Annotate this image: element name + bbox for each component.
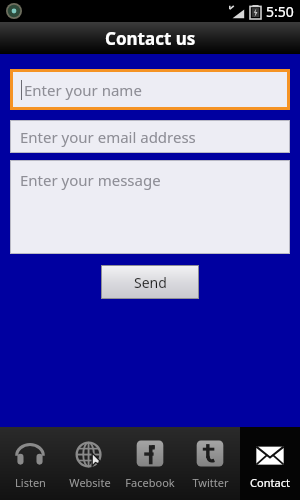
staticText: Twitter	[192, 475, 229, 490]
staticText: Send	[134, 273, 167, 292]
staticText: Facebook	[125, 475, 175, 490]
button[interactable]: Enter your message	[11, 161, 289, 253]
staticText: Enter your email address	[20, 127, 196, 147]
staticText: Listen	[15, 475, 46, 490]
staticText: 5:50	[266, 2, 294, 21]
button[interactable]: Contact	[240, 427, 300, 500]
staticText: Enter your message	[20, 170, 161, 190]
button[interactable]: Enter your name	[13, 72, 287, 107]
staticText: Enter your name	[24, 80, 142, 100]
staticText: Contact	[250, 475, 290, 490]
button[interactable]: Facebook	[120, 427, 180, 500]
button[interactable]: Enter your email address	[11, 121, 289, 152]
button[interactable]: Send	[102, 266, 198, 298]
button[interactable]: Twitter	[180, 427, 240, 500]
button[interactable]: Website	[60, 427, 120, 500]
staticText: Website	[69, 475, 111, 490]
button[interactable]: Listen	[0, 427, 60, 500]
staticText: Contact us	[105, 27, 196, 50]
